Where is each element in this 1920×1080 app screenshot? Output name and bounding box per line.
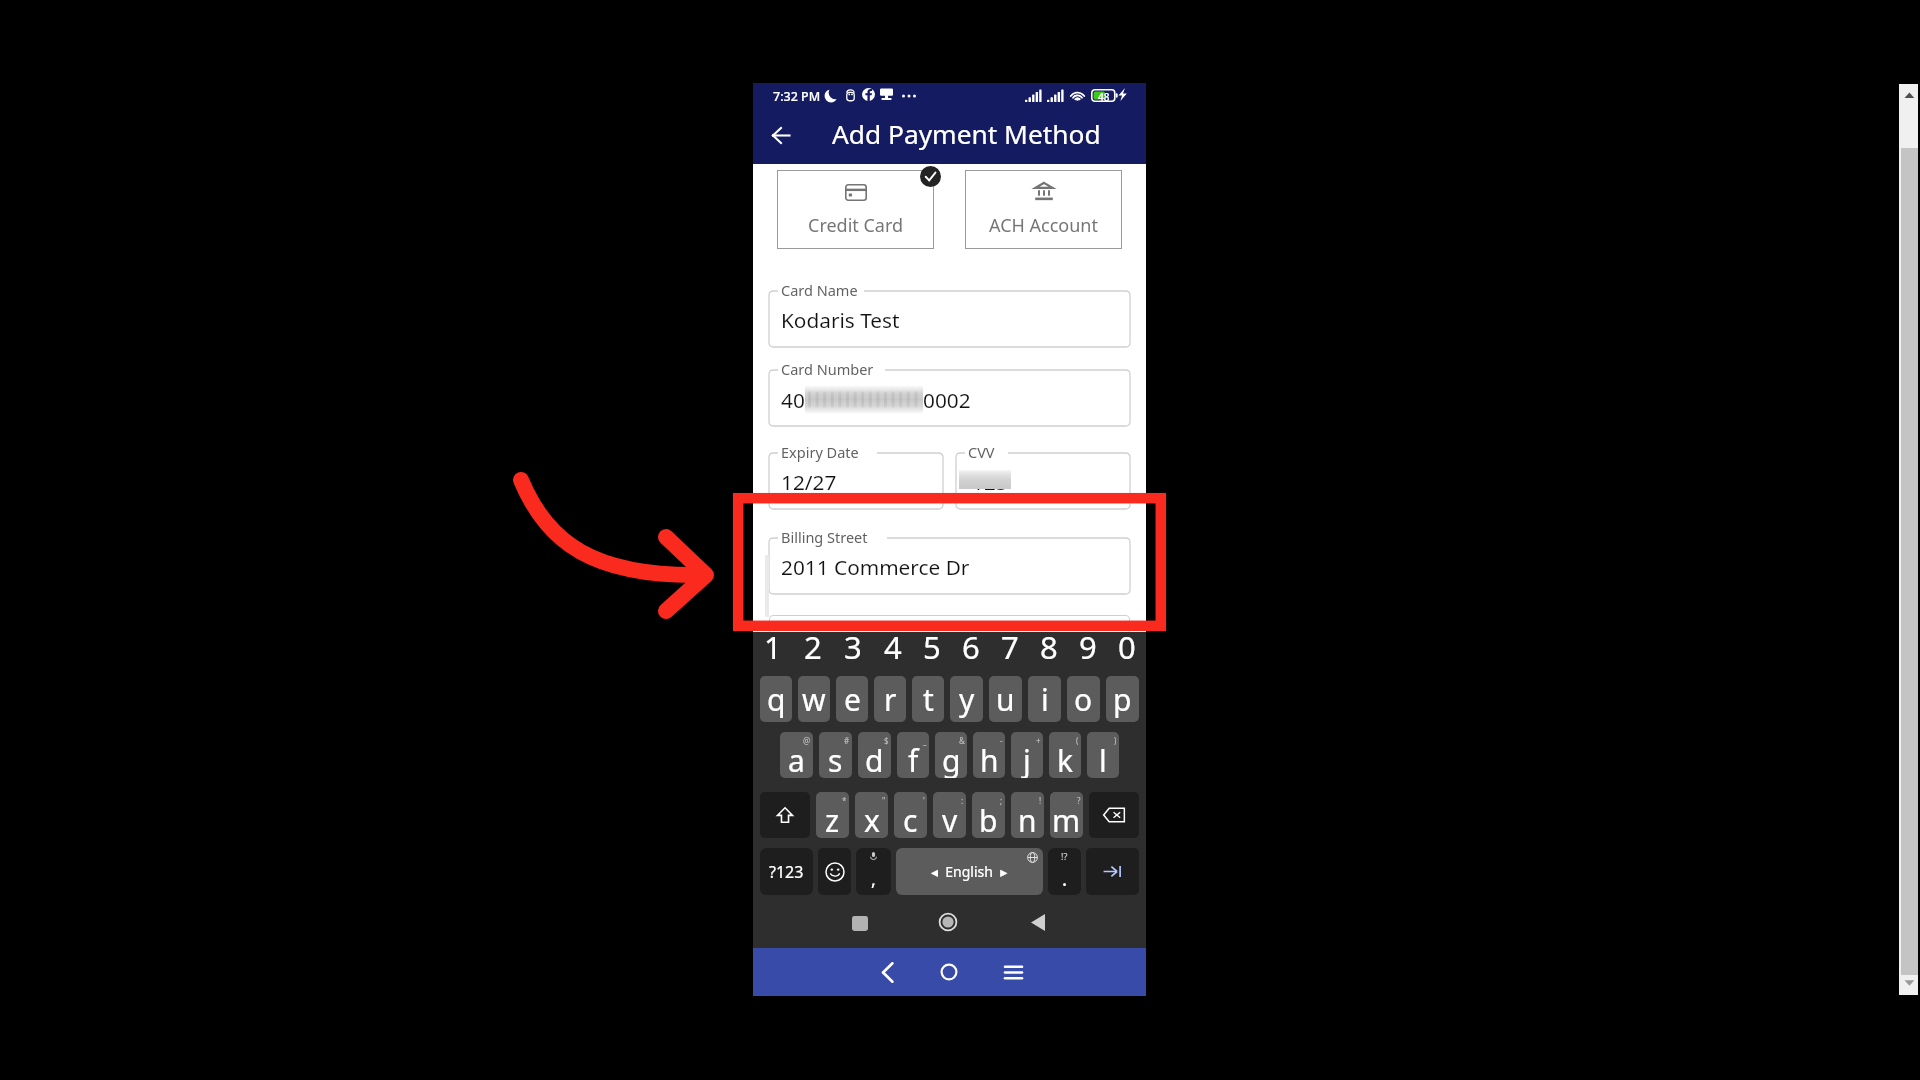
staticText: ?123 [769,861,804,883]
staticText: 8 [1040,626,1058,662]
staticText: q [767,679,786,720]
staticText: 12/27 [781,468,837,496]
staticText: !? [1061,850,1068,862]
button[interactable]: , [856,848,891,895]
staticText: 5 [923,626,941,662]
button[interactable]: Menu [988,948,1038,996]
staticText: k [1057,740,1074,778]
button[interactable]: @ [780,732,813,778]
button[interactable]: u [989,676,1022,722]
staticText: 4 [884,626,902,662]
staticText: c [903,800,918,838]
button[interactable]: p [1106,676,1139,722]
button[interactable]: : [933,792,966,838]
staticText: o [1074,679,1093,720]
button[interactable]: ?123 [760,848,813,895]
button[interactable]: ◂ English ▸ [896,848,1043,895]
staticText: @ [803,735,811,746]
button[interactable]: ? [1050,792,1083,838]
button[interactable]: 8 [1029,626,1068,662]
button[interactable]: r [874,676,906,722]
staticText: 48 [1098,90,1110,104]
staticText: 40 [781,386,805,414]
button[interactable]: 1 [753,626,793,662]
button[interactable]: ; [972,792,1005,838]
staticText: Credit Card [808,213,904,238]
button[interactable]: Back [757,112,805,159]
button[interactable]: & [935,732,967,778]
staticText: ? [1077,795,1081,806]
button[interactable]: ( [1049,732,1081,778]
staticText: 0 [1118,626,1136,662]
button[interactable]: 7 [990,626,1029,662]
button[interactable]: q [760,676,792,722]
button[interactable]: 9 [1068,626,1107,662]
button[interactable]: # [819,732,852,778]
button[interactable]: t [912,676,944,722]
button[interactable]: e [836,676,868,722]
button[interactable]: 5 [912,626,951,662]
button[interactable]: Tab [1086,848,1139,895]
staticText: 0002 [923,386,971,414]
staticText: e [844,679,861,720]
button[interactable]: $ [858,732,891,778]
staticText: f [908,740,919,778]
staticText: ) [1114,735,1117,746]
button[interactable]: . [1048,848,1081,895]
button[interactable]: - [973,732,1005,778]
staticText: * [842,795,847,806]
button[interactable]: ACH Account [965,170,1122,249]
staticText: p [1113,679,1132,720]
button[interactable]: + [1011,732,1043,778]
button[interactable]: o [1067,676,1100,722]
staticText: ◂ English ▸ [931,862,1008,881]
button[interactable]: ' [894,792,927,838]
staticText: 9 [1079,626,1097,662]
button[interactable]: Shift [760,792,810,838]
button[interactable]: Credit Card [777,170,934,249]
button[interactable]: * [816,792,849,838]
button[interactable]: Home [924,948,974,996]
button[interactable]: ) [1087,732,1119,778]
staticText: n [1018,800,1037,838]
button[interactable]: w [798,676,830,722]
button[interactable]: ! [1011,792,1044,838]
staticText: l [1099,740,1107,778]
button[interactable]: y [950,676,983,722]
button[interactable]: Back [862,948,912,996]
staticText: & [959,735,965,746]
button[interactable]: 4 [873,626,912,662]
staticText: ( [1076,735,1079,746]
staticText: 6 [962,626,980,662]
staticText: y [959,679,975,720]
staticText: t [923,679,934,720]
button[interactable]: 0 [1107,626,1146,662]
staticText: $ [884,735,889,746]
button[interactable]: i [1028,676,1061,722]
staticText: r [884,679,897,720]
button[interactable]: 6 [951,626,990,662]
staticText: m [1052,800,1081,838]
staticText: 2 [804,626,822,662]
staticText: - [1000,735,1003,746]
staticText: ; [1000,795,1003,806]
staticText: h [980,740,999,778]
staticText: s [828,740,843,778]
staticText: j [1023,740,1031,778]
button[interactable]: Backspace [1089,792,1139,838]
staticText: x [864,800,880,838]
staticText: Card Name [781,280,858,300]
staticText: + [1036,735,1041,746]
button[interactable]: _ [897,732,929,778]
button[interactable]: 3 [833,626,873,662]
staticText: " [882,795,886,806]
staticText: 7:32 PM [773,88,821,105]
staticText: 2011 Commerce Dr [781,553,970,581]
staticText: ACH Account [989,213,1098,238]
staticText: v [942,800,958,838]
staticText: u [996,679,1015,720]
staticText: w [802,679,826,720]
button[interactable]: 2 [793,626,833,662]
button[interactable]: " [855,792,888,838]
button[interactable]: Emoji [818,848,851,895]
